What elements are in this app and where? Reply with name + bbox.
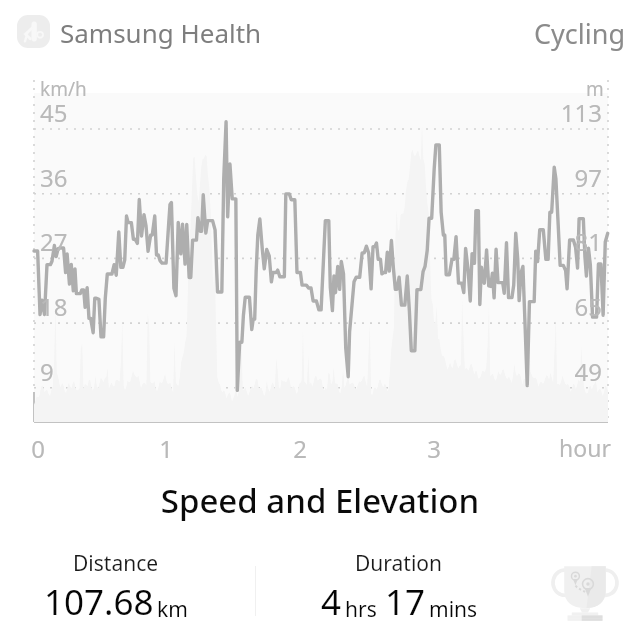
staticText: 49 (522, 355, 602, 388)
staticText: Distance (73, 549, 159, 578)
staticText: 9 (40, 355, 54, 388)
button[interactable]: Distance (16, 549, 216, 626)
staticText: m (586, 76, 604, 102)
staticText: 18 (40, 290, 68, 323)
staticText: mins (429, 595, 478, 624)
staticText: 0 (0, 432, 78, 465)
staticText: 4 (321, 578, 342, 626)
staticText: 65 (522, 290, 602, 323)
staticText: 36 (40, 161, 68, 194)
staticText: 81 (522, 225, 602, 258)
staticText: 17 (385, 578, 426, 626)
staticText: Speed and Elevation (0, 478, 640, 523)
staticText: 3 (394, 432, 474, 465)
staticText: 97 (522, 161, 602, 194)
button[interactable]: Achievement trophy (552, 556, 618, 622)
staticText: 113 (522, 96, 602, 129)
staticText: 45 (40, 96, 68, 129)
staticText: hrs (345, 595, 377, 624)
staticText: km (157, 595, 188, 624)
staticText: Samsung Health (60, 15, 262, 50)
staticText: 107.68 (44, 578, 154, 626)
staticText: hour (545, 432, 625, 463)
staticText: km/h (40, 76, 87, 102)
staticText: Duration (355, 549, 443, 578)
staticText: 1 (126, 432, 206, 465)
button[interactable]: Duration (299, 549, 499, 626)
staticText: Cycling (534, 15, 626, 52)
button[interactable]: Samsung Health app icon (17, 15, 50, 48)
staticText: 27 (40, 225, 68, 258)
staticText: 2 (260, 432, 340, 465)
